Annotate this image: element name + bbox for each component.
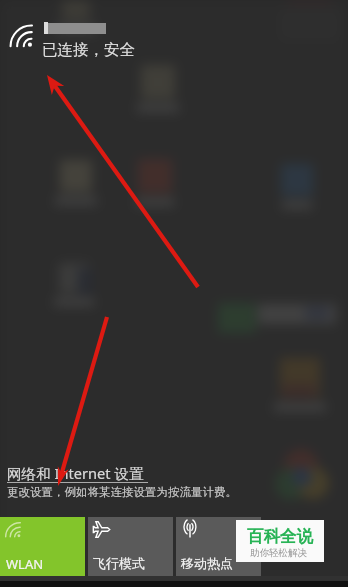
staticText: 百科全说 [247, 526, 313, 547]
staticText: 网络和 Internet 设置 [7, 463, 144, 483]
button[interactable]: WLAN [0, 517, 85, 576]
staticText: 移动热点 [181, 555, 233, 571]
staticText: 已连接，安全 [42, 40, 135, 60]
staticText: 更改设置，例如将某连接设置为按流量计费。 [7, 485, 237, 499]
button[interactable]: Wi-Fi connected [0, 10, 348, 62]
staticText: 助你轻松解决 [250, 547, 307, 559]
button[interactable]: 飞行模式 [88, 517, 173, 576]
button[interactable]: 移动热点 [176, 517, 261, 576]
button[interactable]: 网络和 Internet 设置 [7, 463, 148, 483]
staticText: WLAN [6, 555, 44, 573]
other: Wi-Fi connected [11, 26, 33, 48]
staticText: 飞行模式 [93, 555, 145, 571]
